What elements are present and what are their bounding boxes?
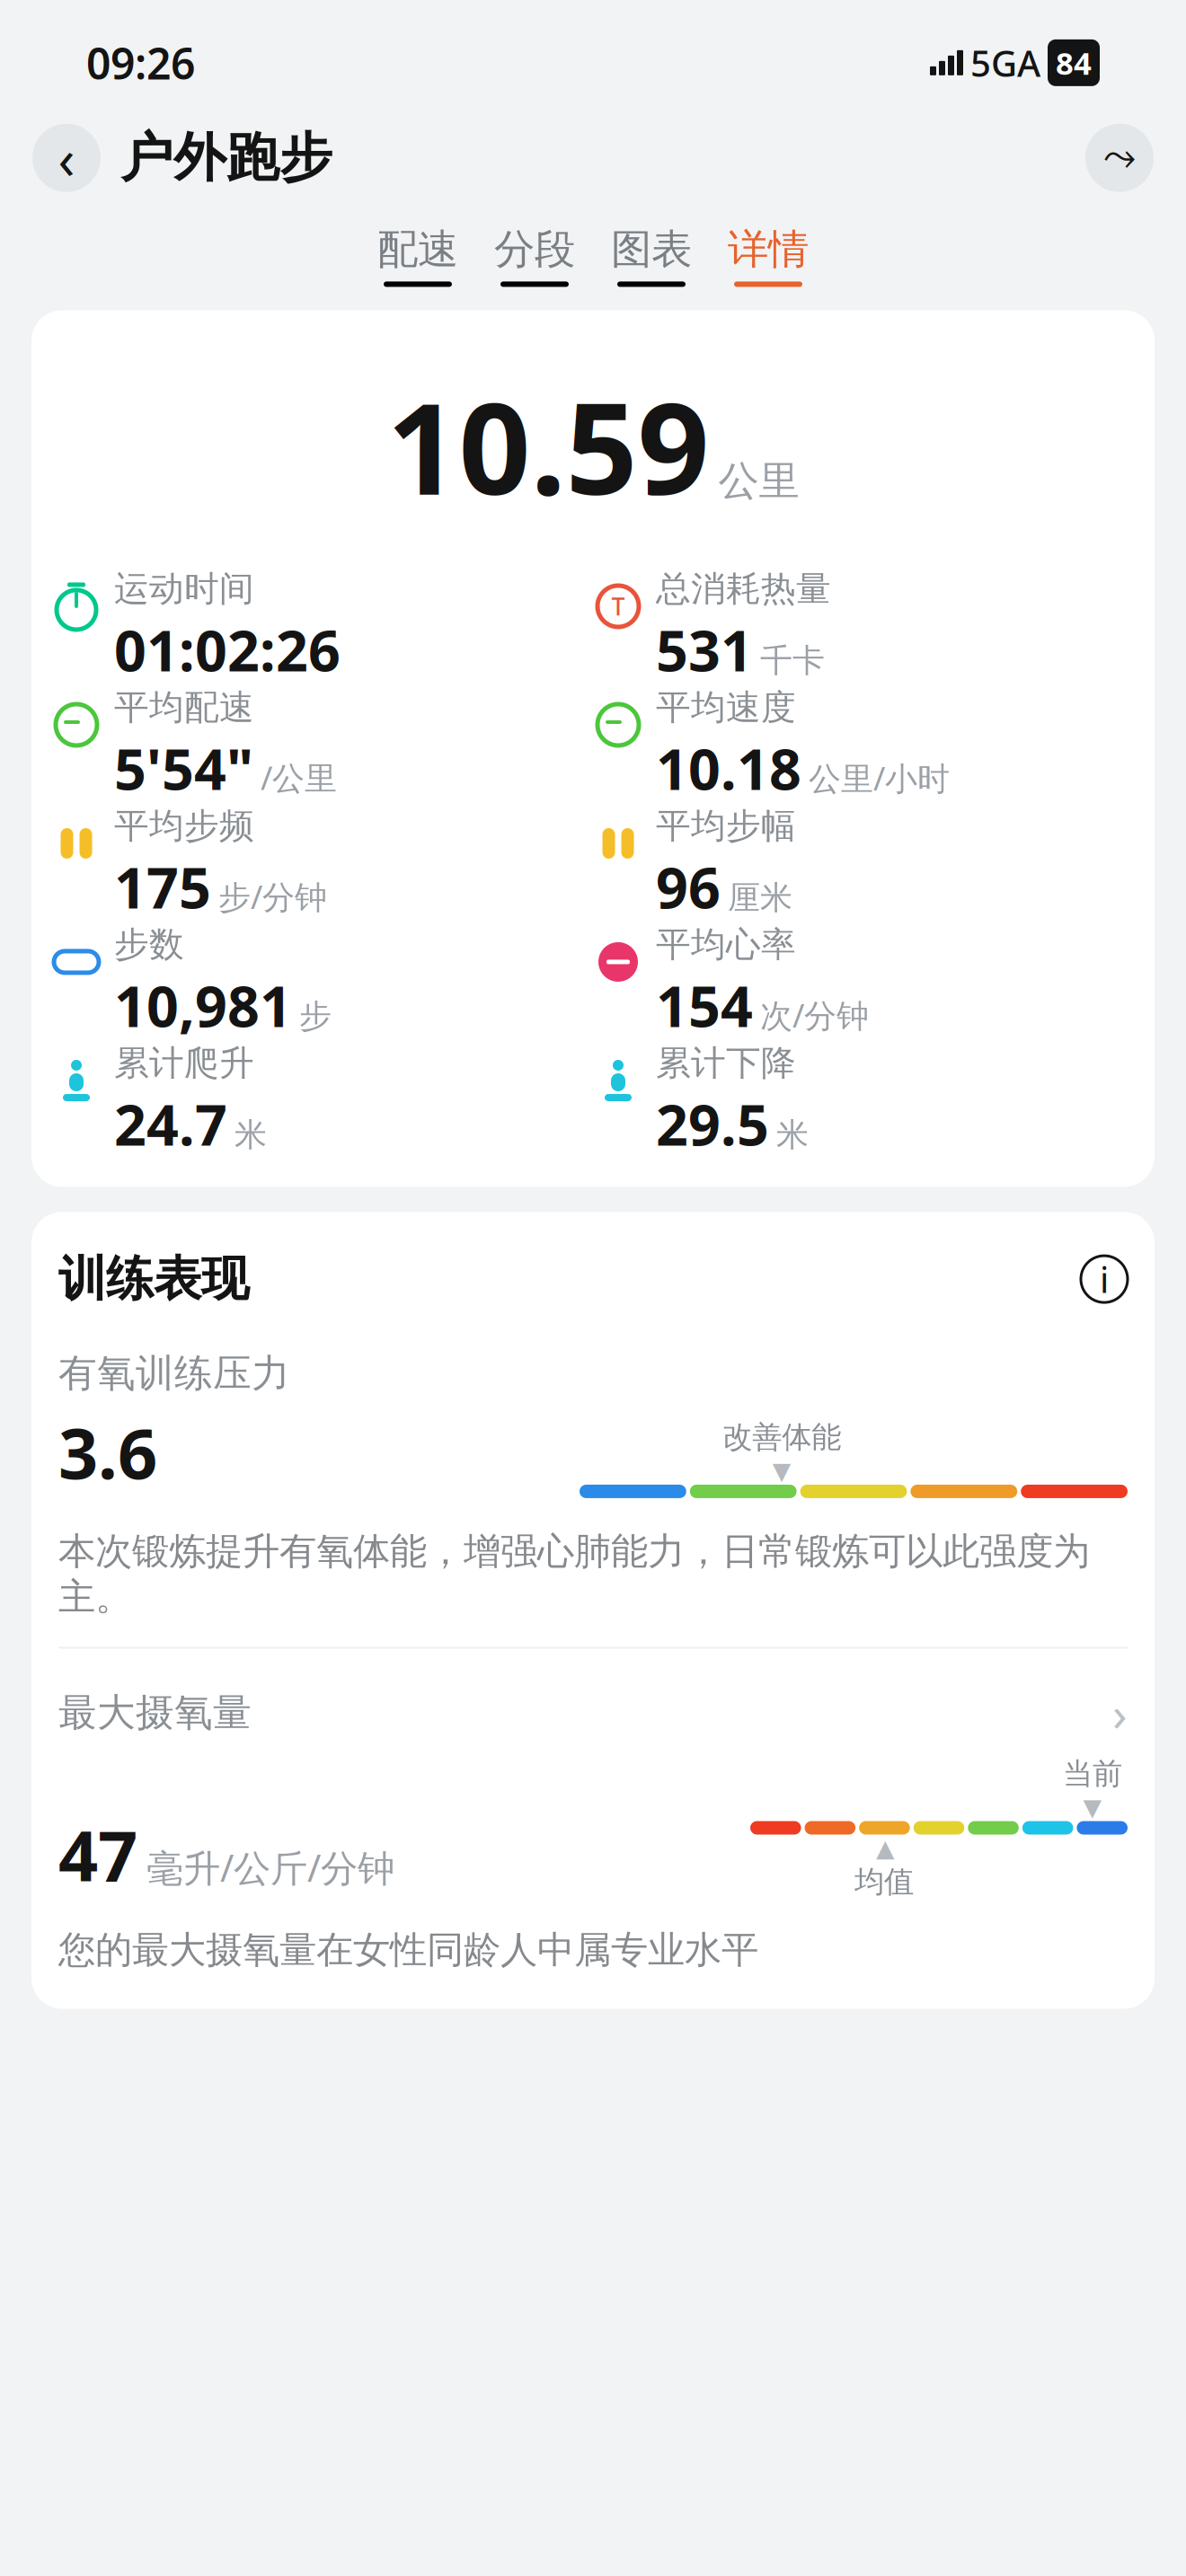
staticText: ‹ xyxy=(58,121,75,194)
staticText: ▲ xyxy=(876,1835,895,1862)
staticText: 步 xyxy=(299,996,332,1036)
staticText: 24.7 xyxy=(114,1086,227,1161)
staticText: /公里 xyxy=(261,756,337,799)
button[interactable]: 详情 xyxy=(722,224,814,287)
staticText: 平均速度 xyxy=(656,686,796,729)
button[interactable]: 最大摄氧量 xyxy=(58,1649,1128,1745)
staticText: 154 xyxy=(656,968,753,1043)
staticText: 厘米 xyxy=(728,878,792,917)
button[interactable]: 图表 xyxy=(606,224,697,287)
staticText: 本次锻炼提升有氧体能，增强心肺能力，日常锻炼可以此强度为主。 xyxy=(58,1529,1090,1620)
staticText: 户外跑步 xyxy=(120,125,332,190)
staticText: 29.5 xyxy=(656,1086,769,1161)
staticText: 毫升/公斤/分钟 xyxy=(146,1843,394,1892)
staticText: 您的最大摄氧量在女性同龄人中属专业水平 xyxy=(58,1927,758,1973)
staticText: ▼ xyxy=(1083,1794,1102,1821)
staticText: 531 xyxy=(656,612,753,687)
staticText: 当前 xyxy=(1063,1755,1122,1792)
staticText: 总消耗热量 xyxy=(656,568,831,610)
staticText: 175 xyxy=(114,849,211,924)
button[interactable]: Back xyxy=(32,124,101,192)
button[interactable]: Share xyxy=(1085,124,1154,192)
staticText: 图表 xyxy=(611,224,692,274)
staticText: 47 xyxy=(58,1808,137,1900)
staticText: 84 xyxy=(1056,42,1092,83)
staticText: 01:02:26 xyxy=(114,612,341,687)
staticText: 米 xyxy=(776,1115,809,1155)
staticText: 09:26 xyxy=(86,34,195,91)
staticText: 平均心率 xyxy=(656,923,796,966)
staticText: 均值 xyxy=(854,1864,914,1900)
staticText: 10.59 xyxy=(387,362,709,529)
staticText: 步数 xyxy=(114,923,184,966)
staticText: › xyxy=(1112,1681,1128,1745)
staticText: 改善体能 xyxy=(723,1419,841,1456)
staticText: 配速 xyxy=(377,224,458,274)
staticText: 公里 xyxy=(718,456,799,506)
staticText: ▼ xyxy=(773,1457,791,1485)
button[interactable]: 配速 xyxy=(372,224,464,287)
staticText: 公里/小时 xyxy=(809,756,950,799)
staticText: 最大摄氧量 xyxy=(58,1689,252,1736)
staticText: 平均步频 xyxy=(114,805,254,847)
staticText: 10,981 xyxy=(114,968,292,1043)
staticText: 详情 xyxy=(728,224,809,274)
staticText: 3.6 xyxy=(58,1406,157,1498)
staticText: 平均配速 xyxy=(114,686,254,729)
staticText: 米 xyxy=(235,1115,267,1155)
button[interactable]: 说明 xyxy=(1081,1256,1128,1302)
staticText: 训练表现 xyxy=(58,1250,249,1308)
staticText: 千卡 xyxy=(760,641,825,680)
staticText: 步/分钟 xyxy=(218,875,327,918)
staticText: 分段 xyxy=(494,224,575,274)
staticText: 平均步幅 xyxy=(656,805,796,847)
staticText: 10.18 xyxy=(656,731,801,805)
staticText: 5GA xyxy=(970,39,1040,87)
staticText: 96 xyxy=(656,849,721,924)
staticText: 运动时间 xyxy=(114,568,254,610)
staticText: 累计下降 xyxy=(656,1042,796,1085)
button[interactable]: 分段 xyxy=(489,224,580,287)
staticText: ⤳ xyxy=(1103,138,1136,178)
staticText: 累计爬升 xyxy=(114,1042,254,1085)
staticText: i xyxy=(1100,1255,1109,1303)
staticText: 5'54" xyxy=(114,731,253,805)
staticText: 有氧训练压力 xyxy=(58,1350,290,1397)
staticText: 次/分钟 xyxy=(760,993,869,1036)
staticText: T xyxy=(611,590,625,622)
